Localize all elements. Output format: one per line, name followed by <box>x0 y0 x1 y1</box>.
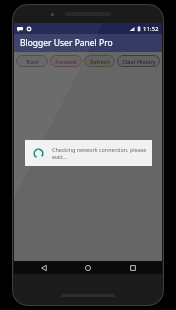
staticText: 11:52 <box>143 25 159 33</box>
staticText: Clear History <box>122 58 156 65</box>
button[interactable]: Home <box>73 261 103 274</box>
staticText: Forward <box>55 58 77 65</box>
staticText: Blogger User Panel Pro <box>20 37 113 49</box>
button[interactable]: Back <box>29 261 59 274</box>
button[interactable]: Back <box>16 55 48 67</box>
button[interactable]: Clear History <box>117 55 160 67</box>
staticText: Refresh <box>90 58 110 65</box>
button[interactable]: Forward <box>50 55 82 67</box>
button[interactable]: Recent apps <box>118 261 148 274</box>
button[interactable]: Refresh <box>84 55 115 67</box>
staticText: Back <box>26 58 39 65</box>
staticText: Checking network connection, please wait… <box>52 146 147 160</box>
